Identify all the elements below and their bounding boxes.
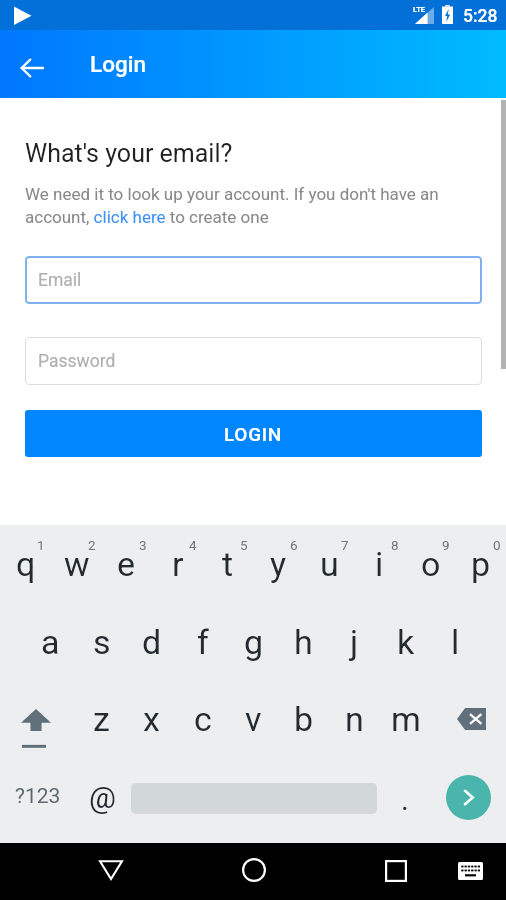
staticText: s bbox=[93, 622, 111, 662]
staticText: LOGIN bbox=[224, 423, 283, 445]
staticText: l bbox=[451, 622, 460, 662]
staticText: 9 bbox=[442, 537, 450, 553]
staticText: o bbox=[421, 544, 441, 584]
staticText: r bbox=[172, 544, 184, 584]
staticText: Email bbox=[38, 270, 82, 291]
button[interactable]: i bbox=[354, 531, 405, 597]
button[interactable]: e bbox=[101, 531, 152, 597]
staticText: k bbox=[397, 622, 415, 662]
button[interactable]: Back bbox=[86, 845, 136, 895]
button[interactable]: r bbox=[152, 531, 203, 597]
staticText: LTE bbox=[413, 5, 426, 14]
button[interactable]: v bbox=[228, 686, 279, 752]
button[interactable]: h bbox=[278, 609, 329, 675]
button[interactable]: Recent apps bbox=[371, 846, 421, 896]
staticText: w bbox=[64, 544, 90, 584]
button[interactable]: o bbox=[405, 531, 456, 597]
staticText: v bbox=[245, 699, 262, 739]
staticText: u bbox=[320, 544, 339, 584]
button[interactable]: a bbox=[25, 609, 76, 675]
staticText: i bbox=[375, 544, 384, 584]
staticText: n bbox=[345, 699, 364, 739]
button[interactable]: Password bbox=[25, 337, 482, 385]
staticText: 4 bbox=[189, 537, 197, 553]
button[interactable]: f bbox=[177, 609, 228, 675]
button[interactable]: Enter bbox=[446, 775, 491, 820]
staticText: h bbox=[294, 622, 313, 662]
staticText: ?123 bbox=[15, 784, 61, 809]
staticText: 3 bbox=[139, 537, 147, 553]
button[interactable]: m bbox=[380, 686, 431, 752]
staticText: 5:28 bbox=[463, 6, 498, 27]
staticText: 5 bbox=[240, 537, 248, 553]
staticText: 2 bbox=[88, 537, 96, 553]
button[interactable]: LOGIN bbox=[25, 410, 482, 457]
button[interactable]: ?123 bbox=[0, 766, 76, 826]
staticText: 0 bbox=[493, 537, 501, 553]
staticText: c bbox=[194, 699, 212, 739]
staticText: Password bbox=[38, 351, 116, 372]
button[interactable]: s bbox=[76, 609, 127, 675]
staticText: p bbox=[471, 544, 491, 584]
staticText: q bbox=[16, 544, 36, 584]
staticText: 8 bbox=[391, 537, 399, 553]
button[interactable]: Email bbox=[25, 256, 482, 304]
staticText: e bbox=[117, 544, 136, 584]
staticText: j bbox=[350, 622, 359, 662]
button[interactable]: Switch keyboard bbox=[445, 846, 495, 896]
button[interactable]: b bbox=[278, 686, 329, 752]
staticText: f bbox=[197, 622, 209, 662]
staticText: b bbox=[294, 699, 314, 739]
staticText: 7 bbox=[341, 537, 349, 553]
staticText: 1 bbox=[37, 537, 45, 553]
button[interactable]: l bbox=[430, 609, 481, 675]
button[interactable]: t bbox=[202, 531, 253, 597]
staticText: 6 bbox=[290, 537, 298, 553]
button[interactable]: Home bbox=[229, 845, 279, 895]
button[interactable]: u bbox=[304, 531, 355, 597]
staticText: . bbox=[401, 782, 409, 817]
button[interactable]: w bbox=[51, 531, 102, 597]
staticText: t bbox=[222, 544, 234, 584]
button[interactable]: @ bbox=[76, 767, 129, 827]
button[interactable]: c bbox=[177, 686, 228, 752]
staticText: Login bbox=[90, 51, 146, 77]
staticText: a bbox=[41, 622, 60, 662]
staticText: x bbox=[143, 699, 160, 739]
button[interactable]: q bbox=[0, 531, 51, 597]
button[interactable]: Backspace bbox=[430, 686, 506, 752]
button[interactable]: y bbox=[253, 531, 304, 597]
staticText: y bbox=[270, 544, 287, 584]
button[interactable]: n bbox=[329, 686, 380, 752]
staticText: m bbox=[391, 699, 421, 739]
staticText: We need it to look up your account. If y… bbox=[25, 184, 455, 227]
staticText: z bbox=[93, 699, 110, 739]
staticText: g bbox=[244, 622, 264, 662]
button[interactable]: d bbox=[126, 609, 177, 675]
button[interactable]: x bbox=[126, 686, 177, 752]
button[interactable]: p bbox=[455, 531, 506, 597]
button[interactable]: Back bbox=[7, 44, 55, 92]
button[interactable]: . bbox=[381, 769, 429, 829]
button[interactable]: z bbox=[76, 686, 127, 752]
button[interactable]: g bbox=[228, 609, 279, 675]
button[interactable]: k bbox=[380, 609, 431, 675]
button[interactable]: Shift bbox=[0, 686, 76, 752]
staticText: @ bbox=[89, 780, 116, 815]
staticText: d bbox=[142, 622, 162, 662]
button[interactable]: j bbox=[329, 609, 380, 675]
staticText: What's your email? bbox=[25, 139, 233, 168]
